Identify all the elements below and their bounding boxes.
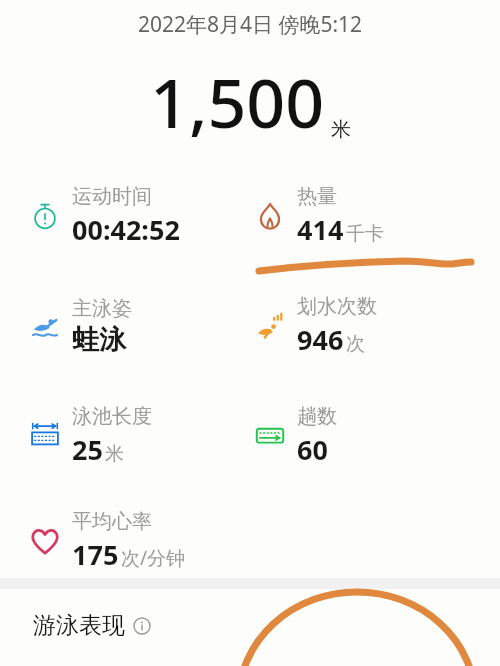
staticText: 热量	[297, 184, 337, 209]
staticText: 次	[346, 332, 365, 356]
staticText: 25	[72, 431, 103, 468]
staticText: 米	[331, 117, 351, 142]
button[interactable]: Calories	[253, 180, 468, 252]
staticText: 平均心率	[72, 509, 152, 534]
other: Info	[133, 617, 151, 635]
other: Main stroke	[28, 309, 62, 343]
staticText: 00:42:52	[72, 211, 180, 248]
button[interactable]: Average heart rate	[28, 505, 243, 577]
other: Average heart rate	[28, 524, 62, 558]
staticText: 趟数	[297, 404, 337, 429]
staticText: 946	[297, 321, 344, 358]
other: Pool length	[28, 419, 62, 453]
other: Strokes	[253, 309, 287, 343]
button[interactable]: Strokes	[253, 290, 468, 362]
staticText: 泳池长度	[72, 404, 152, 429]
other: Calories	[253, 199, 287, 233]
staticText: 175	[72, 536, 119, 573]
staticText: 运动时间	[72, 184, 152, 209]
button[interactable]: Pool length	[28, 400, 243, 472]
staticText: 游泳表现	[33, 611, 125, 640]
staticText: 米	[105, 442, 124, 466]
button[interactable]: Exercise duration	[28, 180, 243, 252]
button[interactable]: Main stroke	[28, 290, 243, 362]
button[interactable]: Laps	[253, 400, 468, 472]
staticText: 414	[297, 211, 344, 248]
staticText: 千卡	[346, 222, 384, 246]
other: Laps	[253, 419, 287, 453]
staticText: 1,500	[150, 55, 325, 148]
other: Exercise duration	[28, 199, 62, 233]
button[interactable]: 游泳表现	[33, 611, 151, 640]
staticText: 次/分钟	[121, 545, 186, 571]
staticText: 主泳姿	[72, 296, 132, 321]
staticText: 划水次数	[297, 294, 377, 319]
staticText: 2022年8月4日 傍晚5:12	[0, 10, 500, 39]
staticText: 蛙泳	[72, 323, 126, 357]
staticText: 60	[297, 431, 328, 468]
